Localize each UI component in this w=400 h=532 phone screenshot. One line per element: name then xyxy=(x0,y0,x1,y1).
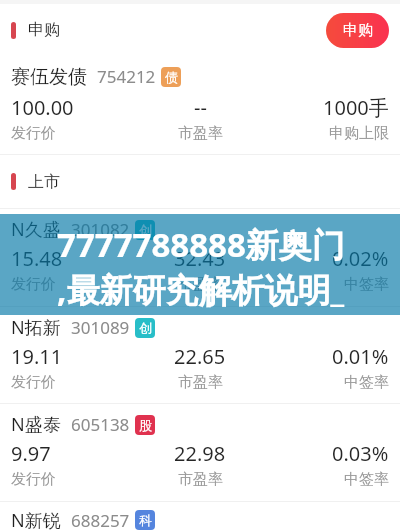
staticText: N拓新 xyxy=(11,315,61,340)
button[interactable]: N新锐 xyxy=(0,502,400,532)
button[interactable]: N久盛 xyxy=(0,209,400,306)
staticText: 赛伍发债 xyxy=(11,65,87,89)
staticText: 发行价 xyxy=(11,470,56,489)
staticText: 754212 xyxy=(97,65,156,88)
staticText: 301089 xyxy=(71,316,130,339)
staticText: 100.00 xyxy=(11,94,74,121)
staticText: 市盈率 xyxy=(178,275,223,294)
staticText: 0.02% xyxy=(332,245,389,272)
staticText: 中签率 xyxy=(344,275,389,294)
staticText: 0.03% xyxy=(332,440,389,467)
staticText: 301082 xyxy=(71,218,130,241)
staticText: 科 xyxy=(139,512,152,528)
staticText: 19.11 xyxy=(11,343,63,370)
staticText: 市盈率 xyxy=(178,373,223,392)
staticText: ,最新研究解析说明_ xyxy=(57,267,344,312)
staticText: 9.97 xyxy=(11,440,51,467)
staticText: 申购 xyxy=(28,20,60,40)
staticText: 中签率 xyxy=(344,470,389,489)
staticText: 上市 xyxy=(28,172,60,192)
staticText: 22.65 xyxy=(174,343,226,370)
staticText: 债 xyxy=(165,69,178,85)
staticText: 市盈率 xyxy=(178,470,223,489)
button[interactable]: 赛伍发债 xyxy=(0,56,400,154)
staticText: N新锐 xyxy=(11,508,61,532)
staticText: N盛泰 xyxy=(11,412,61,437)
staticText: 股 xyxy=(139,417,152,433)
staticText: 市盈率 xyxy=(178,124,223,143)
button[interactable]: N拓新 xyxy=(0,307,400,403)
staticText: 发行价 xyxy=(11,124,56,143)
staticText: 申购上限 xyxy=(329,124,389,143)
staticText: 688257 xyxy=(71,509,130,532)
staticText: 32.43 xyxy=(174,245,226,272)
staticText: 7777788888新奥门 xyxy=(57,222,345,267)
staticText: 15.48 xyxy=(11,245,63,272)
staticText: 0.01% xyxy=(332,343,389,370)
button[interactable]: 申购 xyxy=(326,13,389,48)
staticText: 22.98 xyxy=(174,440,226,467)
staticText: N久盛 xyxy=(11,217,61,242)
staticText: 中签率 xyxy=(344,373,389,392)
staticText: 605138 xyxy=(71,413,130,436)
staticText: 申购 xyxy=(343,21,373,40)
staticText: 1000手 xyxy=(323,94,389,121)
staticText: -- xyxy=(194,94,207,121)
staticText: 创 xyxy=(139,222,152,238)
staticText: 发行价 xyxy=(11,275,56,294)
staticText: 创 xyxy=(139,320,152,336)
staticText: 发行价 xyxy=(11,373,56,392)
button[interactable]: N盛泰 xyxy=(0,404,400,501)
